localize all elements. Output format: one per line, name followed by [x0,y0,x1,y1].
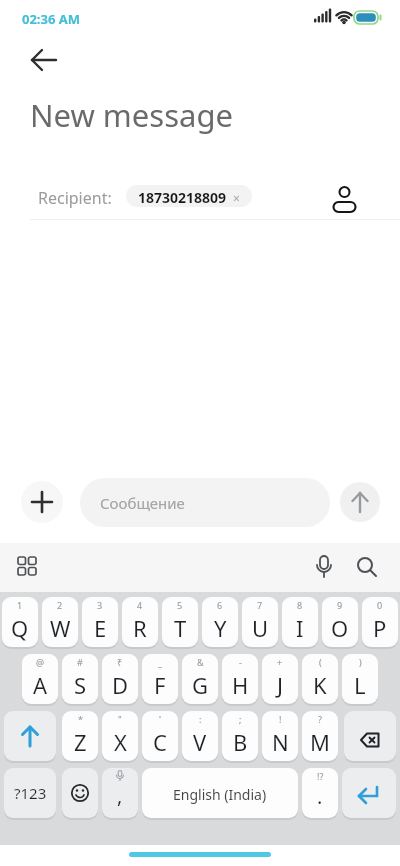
staticText: # [77,656,83,668]
staticText: X [114,727,127,757]
staticText: ' [159,713,162,725]
staticText: 8 [297,599,303,611]
staticText: 5 [177,599,183,611]
staticText: K [313,670,327,700]
button[interactable]: ! [262,711,298,761]
staticText: ( [319,656,322,668]
staticText: 18730218809 [138,188,227,207]
staticText: 7 [257,599,263,611]
staticText: Z [74,727,87,757]
staticText: ; [239,713,242,725]
button[interactable]: 1 [2,597,38,647]
staticText: 9 [337,599,343,611]
button[interactable]: ( [302,654,338,704]
button[interactable]: English (India) [142,768,298,818]
staticText: English (India) [173,785,267,804]
staticText: W [50,613,71,643]
staticText: T [174,613,187,643]
button[interactable]: * [62,711,98,761]
staticText: Recipient: [38,187,112,209]
button[interactable] [4,711,56,761]
button[interactable]: 0 [362,597,398,647]
staticText: J [277,670,284,700]
staticText: 4 [137,599,143,611]
staticText: , [117,782,123,809]
button[interactable]: 8 [282,597,318,647]
staticText: . [317,783,323,810]
button[interactable]: , [102,768,138,818]
staticText: M [310,727,330,757]
staticText: V [193,727,207,757]
button[interactable] [12,552,42,582]
staticText: New message [30,94,233,136]
button[interactable]: @ [22,654,58,704]
staticText: R [133,613,147,643]
staticText: L [354,670,366,700]
staticText: D [112,670,129,700]
staticText: N [272,727,289,757]
staticText: ) [359,656,362,668]
staticText: ! [279,713,282,725]
button[interactable] [342,768,396,818]
staticText: 1 [17,599,23,611]
staticText: C [153,727,167,757]
staticText: 6 [217,599,223,611]
button[interactable]: 6 [202,597,238,647]
staticText: ?123 [14,783,47,803]
staticText: 2 [57,599,63,611]
staticText: ₹ [117,656,123,668]
staticText: 3 [97,599,103,611]
staticText: S [74,670,87,700]
staticText: + [277,656,283,668]
button[interactable]: ' [142,711,178,761]
button[interactable]: ) [342,654,378,704]
button[interactable]: 4 [122,597,158,647]
staticText: P [373,613,387,643]
staticText: Y [214,613,227,643]
button[interactable]: _ [142,654,178,704]
button[interactable] [352,552,382,582]
button[interactable]: 2 [42,597,78,647]
button[interactable]: ₹ [102,654,138,704]
staticText: E [94,613,107,643]
button[interactable] [22,46,64,76]
button[interactable]: ; [222,711,258,761]
button[interactable] [62,768,98,818]
button[interactable]: # [62,654,98,704]
button[interactable]: ?123 [4,768,56,818]
button[interactable] [21,481,63,523]
staticText: @ [36,656,45,668]
button[interactable] [310,552,338,582]
button[interactable]: : [182,711,218,761]
button[interactable] [330,181,360,214]
button[interactable]: !? [302,768,338,818]
button[interactable]: 18730218809 [126,185,252,207]
staticText: : [199,713,202,725]
staticText: & [197,656,204,668]
button[interactable]: ? [302,711,338,761]
staticText: A [33,670,48,700]
button[interactable] [344,711,396,761]
staticText: _ [158,656,162,668]
staticText: O [331,613,349,643]
staticText: H [232,670,249,700]
staticText: B [233,727,248,757]
button[interactable]: 7 [242,597,278,647]
button[interactable]: - [222,654,258,704]
staticText: 02:36 AM [22,10,81,28]
staticText: G [192,670,209,700]
staticText: F [154,670,166,700]
staticText: " [118,713,122,725]
staticText: × [233,190,240,206]
button[interactable]: 5 [162,597,198,647]
staticText: U [252,613,269,643]
button[interactable]: 3 [82,597,118,647]
button[interactable]: + [262,654,298,704]
button[interactable]: 9 [322,597,358,647]
button[interactable]: " [102,711,138,761]
button[interactable]: Сообщение [80,478,330,527]
button[interactable] [340,482,380,522]
staticText: I [296,613,304,643]
staticText: Сообщение [100,493,185,513]
button[interactable]: & [182,654,218,704]
